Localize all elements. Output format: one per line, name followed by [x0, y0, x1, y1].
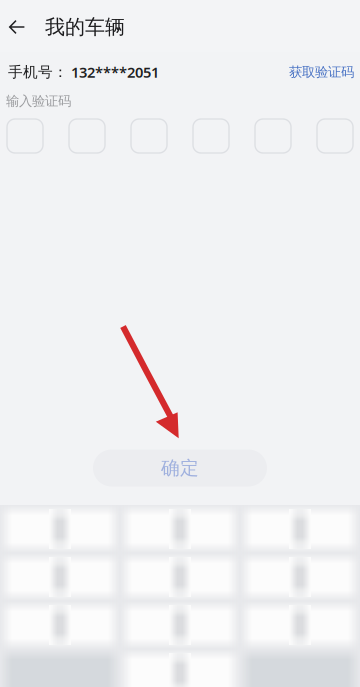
button[interactable]: 5: [120, 553, 240, 601]
button[interactable]: 8: [120, 601, 240, 649]
button[interactable]: Verification digit 2: [69, 119, 105, 153]
button[interactable]: Verification digit 1: [7, 119, 43, 153]
button[interactable]: Verification digit 5: [255, 119, 291, 153]
button[interactable]: 9: [240, 601, 360, 649]
button[interactable]: 确定: [93, 449, 267, 486]
staticText: 132****2051: [71, 62, 159, 82]
button[interactable]: Verification digit 4: [193, 119, 229, 153]
button[interactable]: 2: [120, 505, 240, 553]
button[interactable]: Back: [0, 5, 37, 49]
button[interactable]: Verification digit 3: [131, 119, 167, 153]
button[interactable]: 4: [0, 553, 120, 601]
button[interactable]: 获取验证码: [274, 61, 354, 83]
staticText: 确定: [161, 456, 199, 479]
staticText: 获取验证码: [289, 64, 354, 80]
button[interactable]: 1: [0, 505, 120, 553]
staticText: 输入验证码: [6, 93, 71, 109]
button[interactable]: Keypad: [240, 649, 360, 687]
button[interactable]: 6: [240, 553, 360, 601]
staticText: 我的车辆: [45, 15, 125, 39]
staticText: 手机号：: [8, 63, 68, 81]
button[interactable]: 0: [120, 649, 240, 687]
button[interactable]: 7: [0, 601, 120, 649]
button[interactable]: 3: [240, 505, 360, 553]
button[interactable]: Keypad: [0, 649, 120, 687]
button[interactable]: Verification digit 6: [317, 119, 353, 153]
